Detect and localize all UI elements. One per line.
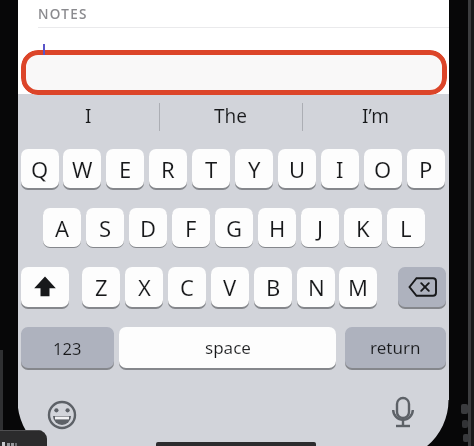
button[interactable]: G <box>215 208 253 247</box>
button[interactable] <box>21 267 69 307</box>
staticText: E <box>119 154 132 184</box>
staticText: 123 <box>53 337 82 359</box>
staticText: space <box>205 336 251 359</box>
button[interactable]: I’m <box>302 92 449 139</box>
button[interactable]: O <box>364 149 402 188</box>
staticText: T <box>205 154 218 184</box>
staticText: C <box>180 272 194 302</box>
staticText: R <box>161 154 175 184</box>
staticText: O <box>374 154 392 184</box>
staticText: B <box>266 272 281 302</box>
staticText: F <box>185 213 197 243</box>
button[interactable]: F <box>172 208 210 247</box>
button[interactable] <box>388 395 418 431</box>
staticText: A <box>55 213 70 243</box>
staticText: NOTES <box>38 5 88 23</box>
button[interactable] <box>398 267 446 307</box>
staticText: I <box>336 154 344 184</box>
button[interactable]: I <box>18 92 159 139</box>
staticText: X <box>138 272 151 302</box>
button[interactable]: P <box>407 149 445 188</box>
button[interactable]: Q <box>21 149 59 188</box>
button[interactable]: Z <box>82 267 120 307</box>
button[interactable]: K <box>344 208 382 247</box>
button[interactable]: J <box>301 208 339 247</box>
button[interactable]: H <box>258 208 296 247</box>
button[interactable]: I <box>321 149 359 188</box>
staticText: Z <box>95 272 108 302</box>
staticText: V <box>223 272 237 302</box>
button[interactable]: M <box>339 267 377 307</box>
staticText: The <box>214 103 248 129</box>
button[interactable]: T <box>192 149 230 188</box>
staticText: Y <box>248 154 261 184</box>
button[interactable]: X <box>125 267 163 307</box>
button[interactable]: Y <box>235 149 273 188</box>
button[interactable]: A <box>43 208 81 247</box>
button[interactable]: D <box>129 208 167 247</box>
button[interactable]: W <box>63 149 101 188</box>
button[interactable]: E <box>106 149 144 188</box>
staticText: U <box>289 154 306 184</box>
staticText: K <box>356 213 370 243</box>
staticText: Q <box>31 154 49 184</box>
staticText: W <box>72 154 93 184</box>
button[interactable]: N <box>297 267 335 307</box>
staticText: N <box>308 272 325 302</box>
button[interactable]: R <box>149 149 187 188</box>
button[interactable]: B <box>254 267 292 307</box>
button[interactable]: S <box>86 208 124 247</box>
button[interactable]: 123 <box>21 327 114 368</box>
staticText: I’m <box>362 103 389 129</box>
button[interactable]: U <box>278 149 316 188</box>
button[interactable]: space <box>119 327 336 368</box>
staticText: I <box>85 103 92 129</box>
staticText: L <box>400 213 412 243</box>
staticText: P <box>419 154 433 184</box>
button[interactable]: return <box>345 327 446 368</box>
staticText: H <box>269 213 286 243</box>
staticText: J <box>317 213 324 243</box>
button[interactable]: The <box>159 92 302 139</box>
staticText: D <box>140 213 157 243</box>
button[interactable] <box>21 50 447 95</box>
button[interactable]: C <box>168 267 206 307</box>
button[interactable] <box>48 400 76 428</box>
button[interactable]: V <box>211 267 249 307</box>
staticText: S <box>99 213 112 243</box>
staticText: return <box>370 336 421 359</box>
staticText: M <box>348 272 368 302</box>
button[interactable]: L <box>387 208 425 247</box>
staticText: G <box>226 213 243 243</box>
